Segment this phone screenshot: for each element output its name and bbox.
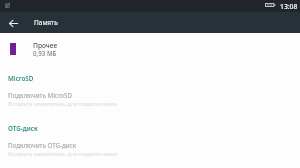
staticText: Вставьте накопитель для подключения — [8, 100, 117, 108]
button[interactable]: Прочее — [0, 38, 300, 60]
button[interactable]: Back — [4, 14, 22, 32]
staticText: OTG-диск — [8, 124, 38, 133]
staticText: Прочее — [33, 41, 58, 50]
staticText: 13:08 — [280, 2, 298, 11]
button[interactable]: Подключить MicroSD — [0, 89, 300, 109]
staticText: Вставьте накопитель для подключения — [8, 150, 117, 158]
staticText: MicroSD — [8, 74, 34, 83]
staticText: Память — [34, 18, 58, 27]
button[interactable]: Подключить OTG-диск — [0, 139, 300, 159]
staticText: 0,93 МБ — [33, 49, 57, 57]
staticText: Подключить OTG-диск — [8, 141, 77, 149]
staticText: Подключить MicroSD — [8, 91, 72, 99]
